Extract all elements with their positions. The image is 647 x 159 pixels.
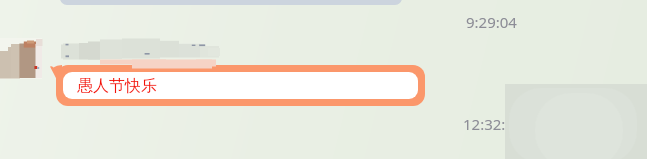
staticText: 12:32: bbox=[463, 114, 506, 134]
staticText: 9:29:04 bbox=[466, 12, 517, 32]
button[interactable]: 愚人节快乐 bbox=[63, 72, 418, 99]
staticText: 愚人节快乐 bbox=[77, 76, 157, 96]
